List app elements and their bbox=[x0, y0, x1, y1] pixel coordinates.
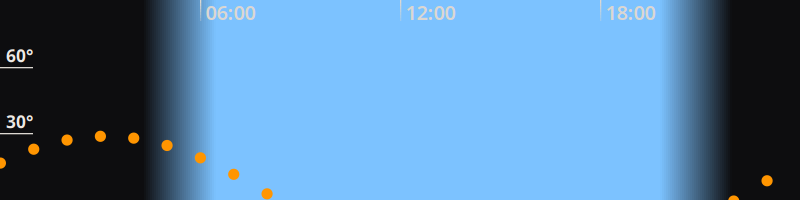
staticText: 06:00 bbox=[205, 0, 255, 26]
staticText: 30° bbox=[6, 110, 33, 133]
staticText: 60° bbox=[6, 44, 33, 67]
staticText: 18:00 bbox=[605, 0, 655, 26]
staticText: 12:00 bbox=[405, 0, 455, 26]
